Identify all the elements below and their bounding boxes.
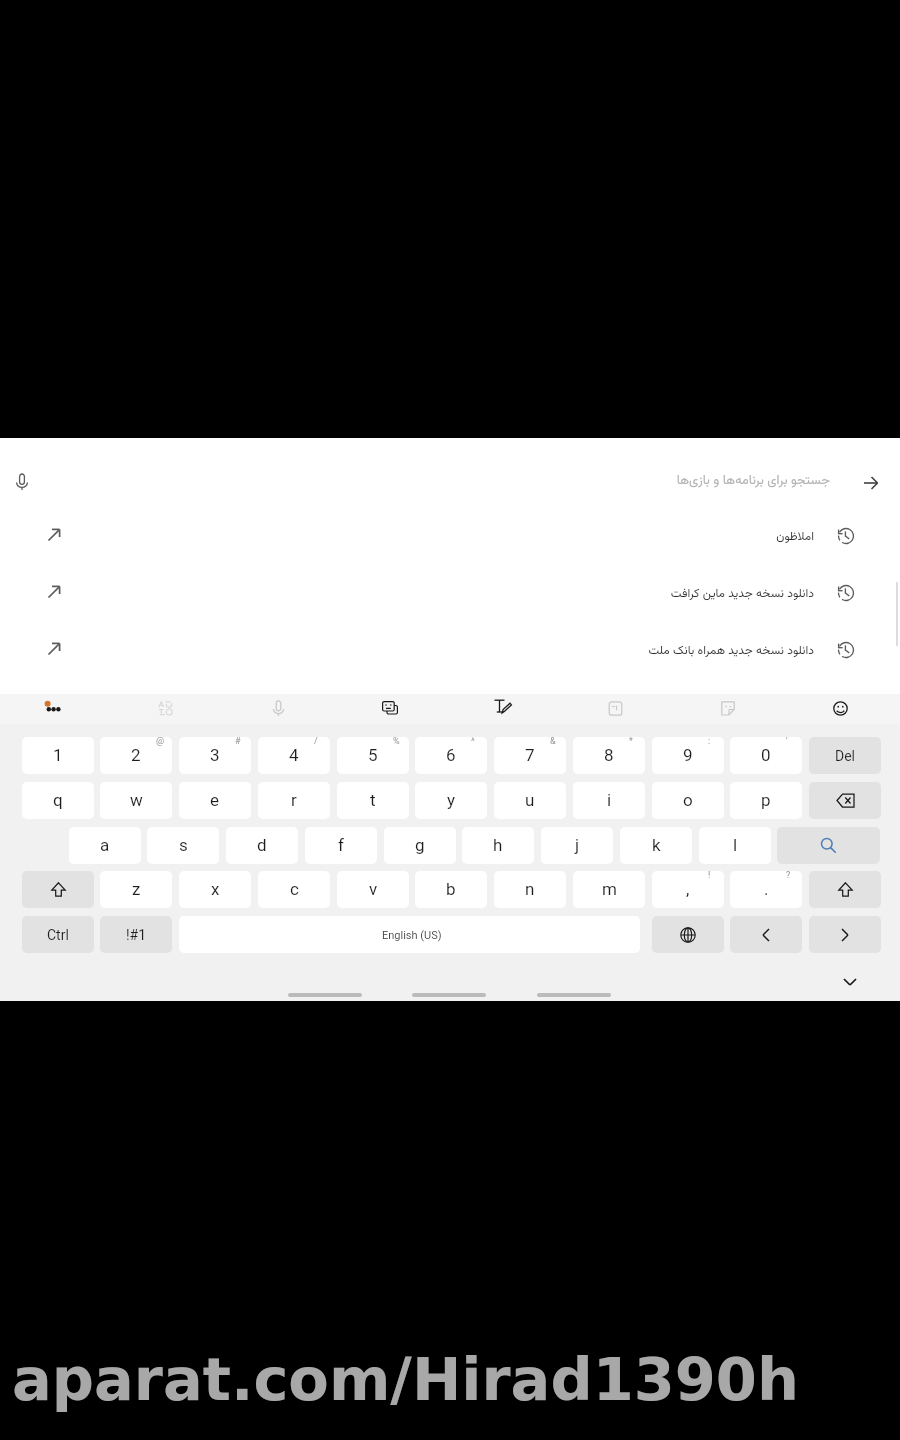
staticText: 9 [683,745,693,765]
staticText: دانلود نسخه جدید همراه بانک ملت [414,642,814,661]
button[interactable]: . [730,871,802,908]
button[interactable]: k [620,827,692,864]
button[interactable]: q [22,782,94,819]
staticText: & [550,737,556,747]
staticText: aparat.com/Hirad1390h [12,1345,799,1414]
button[interactable]: Search [777,827,880,864]
button[interactable]: املاظون [0,508,900,565]
button[interactable]: x [179,871,251,908]
button[interactable]: Voice search [2,462,42,502]
button[interactable]: z [100,871,172,908]
staticText: 2 [131,745,141,765]
button[interactable]: i [573,782,645,819]
button[interactable]: a [69,827,141,864]
button[interactable]: Translate [147,690,183,726]
staticText: m [602,879,617,899]
staticText: i [607,790,612,810]
button[interactable]: p [730,782,802,819]
button[interactable]: Stickers [710,690,746,726]
button[interactable]: 1 [22,737,94,774]
button[interactable]: d [226,827,298,864]
staticText: املاظون [414,528,814,547]
button[interactable]: Backspace [809,782,881,819]
staticText: 0 [761,745,771,765]
staticText: h [493,835,503,855]
button[interactable]: Del [809,737,881,774]
staticText: 5 [368,745,378,765]
staticText: y [447,790,456,810]
staticText: b [446,879,456,899]
staticText: !#1 [126,927,147,943]
button[interactable]: Voice input [260,690,296,726]
button[interactable]: 8 [573,737,645,774]
staticText: 4 [289,745,299,765]
button[interactable]: !#1 [100,916,172,953]
button[interactable]: t [337,782,409,819]
staticText: j [575,835,580,855]
button[interactable]: 0 [730,737,802,774]
button[interactable]: 6 [415,737,487,774]
button[interactable]: h [462,827,534,864]
button[interactable]: 9 [652,737,724,774]
button[interactable]: Clipboard [372,690,408,726]
button[interactable]: s [147,827,219,864]
button[interactable]: More options [35,690,71,726]
button[interactable]: 4 [258,737,330,774]
staticText: ! [708,871,711,881]
button[interactable]: 7 [494,737,566,774]
button[interactable]: e [179,782,251,819]
staticText: English (US) [382,929,442,942]
button[interactable]: m [573,871,645,908]
button[interactable]: Handwriting [485,690,521,726]
staticText: o [683,790,693,810]
button[interactable]: f [305,827,377,864]
staticText: ? [786,871,791,881]
staticText: w [130,790,143,810]
button[interactable]: Shift [809,871,881,908]
button[interactable]: y [415,782,487,819]
staticText: u [525,790,535,810]
staticText: l [733,835,738,855]
button[interactable]: 2 [100,737,172,774]
button[interactable]: Hide keyboard [828,960,872,1004]
staticText: k [652,835,661,855]
button[interactable]: 5 [337,737,409,774]
staticText: q [53,790,63,810]
staticText: c [290,879,299,899]
button[interactable]: g [384,827,456,864]
button[interactable]: b [415,871,487,908]
button[interactable]: u [494,782,566,819]
button[interactable]: , [652,871,724,908]
button[interactable]: l [699,827,771,864]
button[interactable]: Change language [652,916,724,953]
button[interactable]: j [541,827,613,864]
button[interactable]: دانلود نسخه جدید ماین کرافت [0,565,900,622]
button[interactable]: Previous [730,916,802,953]
staticText: ^ [471,737,475,747]
button[interactable]: Space [179,916,640,953]
button[interactable]: v [337,871,409,908]
button[interactable]: Search [851,463,891,503]
button[interactable]: Next [809,916,881,953]
button[interactable]: Emoji [822,690,858,726]
staticText: % [393,737,400,747]
button[interactable]: o [652,782,724,819]
button[interactable]: GIF [597,690,633,726]
button[interactable]: n [494,871,566,908]
button[interactable]: Ctrl [22,916,94,953]
staticText: f [338,835,344,855]
staticText: Ctrl [47,927,69,943]
staticText: n [525,879,535,899]
button[interactable]: w [100,782,172,819]
button[interactable]: r [258,782,330,819]
button[interactable]: دانلود نسخه جدید همراه بانک ملت [0,622,900,679]
staticText: # [235,737,241,747]
staticText: x [211,879,220,899]
staticText: s [179,835,188,855]
button[interactable]: 3 [179,737,251,774]
button[interactable]: Shift [22,871,94,908]
staticText: v [369,879,378,899]
button[interactable]: c [258,871,330,908]
staticText: ' [786,737,788,747]
staticText: @ [156,737,165,747]
